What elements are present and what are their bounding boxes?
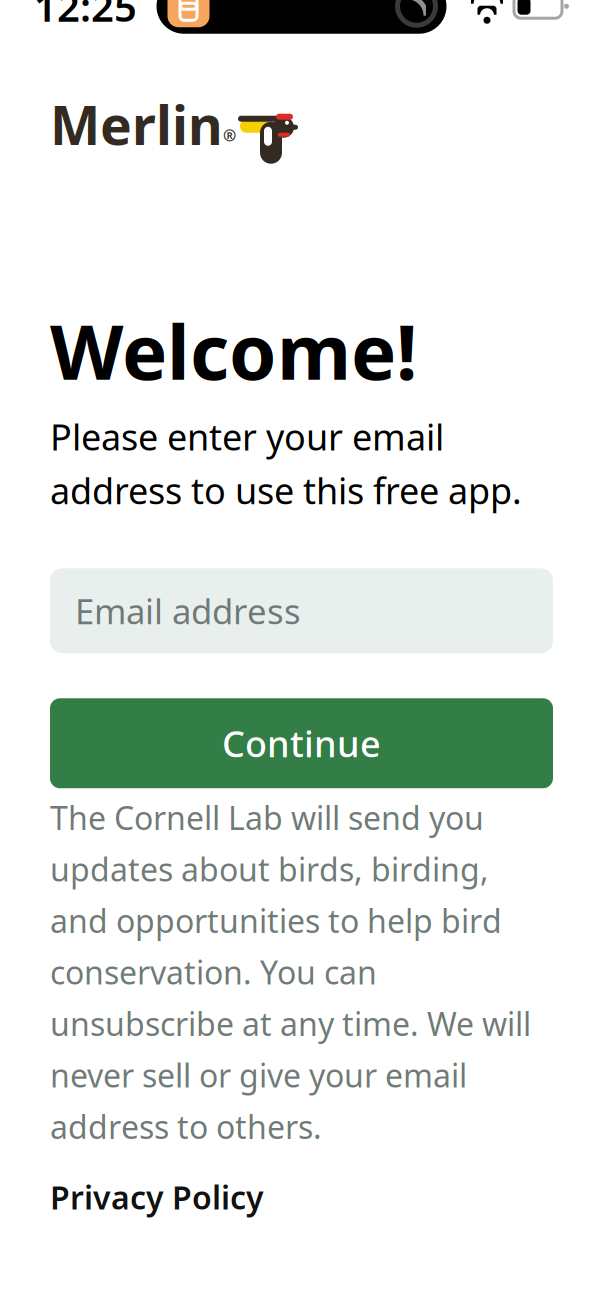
button[interactable]: Email address [50, 568, 553, 653]
staticText: ® [223, 124, 236, 146]
staticText: Continue [222, 719, 381, 767]
button[interactable]: Continue [50, 698, 553, 788]
staticText: Email address [75, 588, 301, 634]
staticText: Please enter your email address to use t… [50, 413, 522, 514]
staticText: Merlin [50, 89, 223, 160]
button[interactable]: Privacy Policy [50, 1176, 264, 1218]
staticText: The Cornell Lab will send you updates ab… [50, 796, 531, 1148]
staticText: Welcome! [50, 300, 417, 401]
staticText: Privacy Policy [50, 1176, 264, 1218]
staticText: 12:25 [34, 0, 137, 33]
